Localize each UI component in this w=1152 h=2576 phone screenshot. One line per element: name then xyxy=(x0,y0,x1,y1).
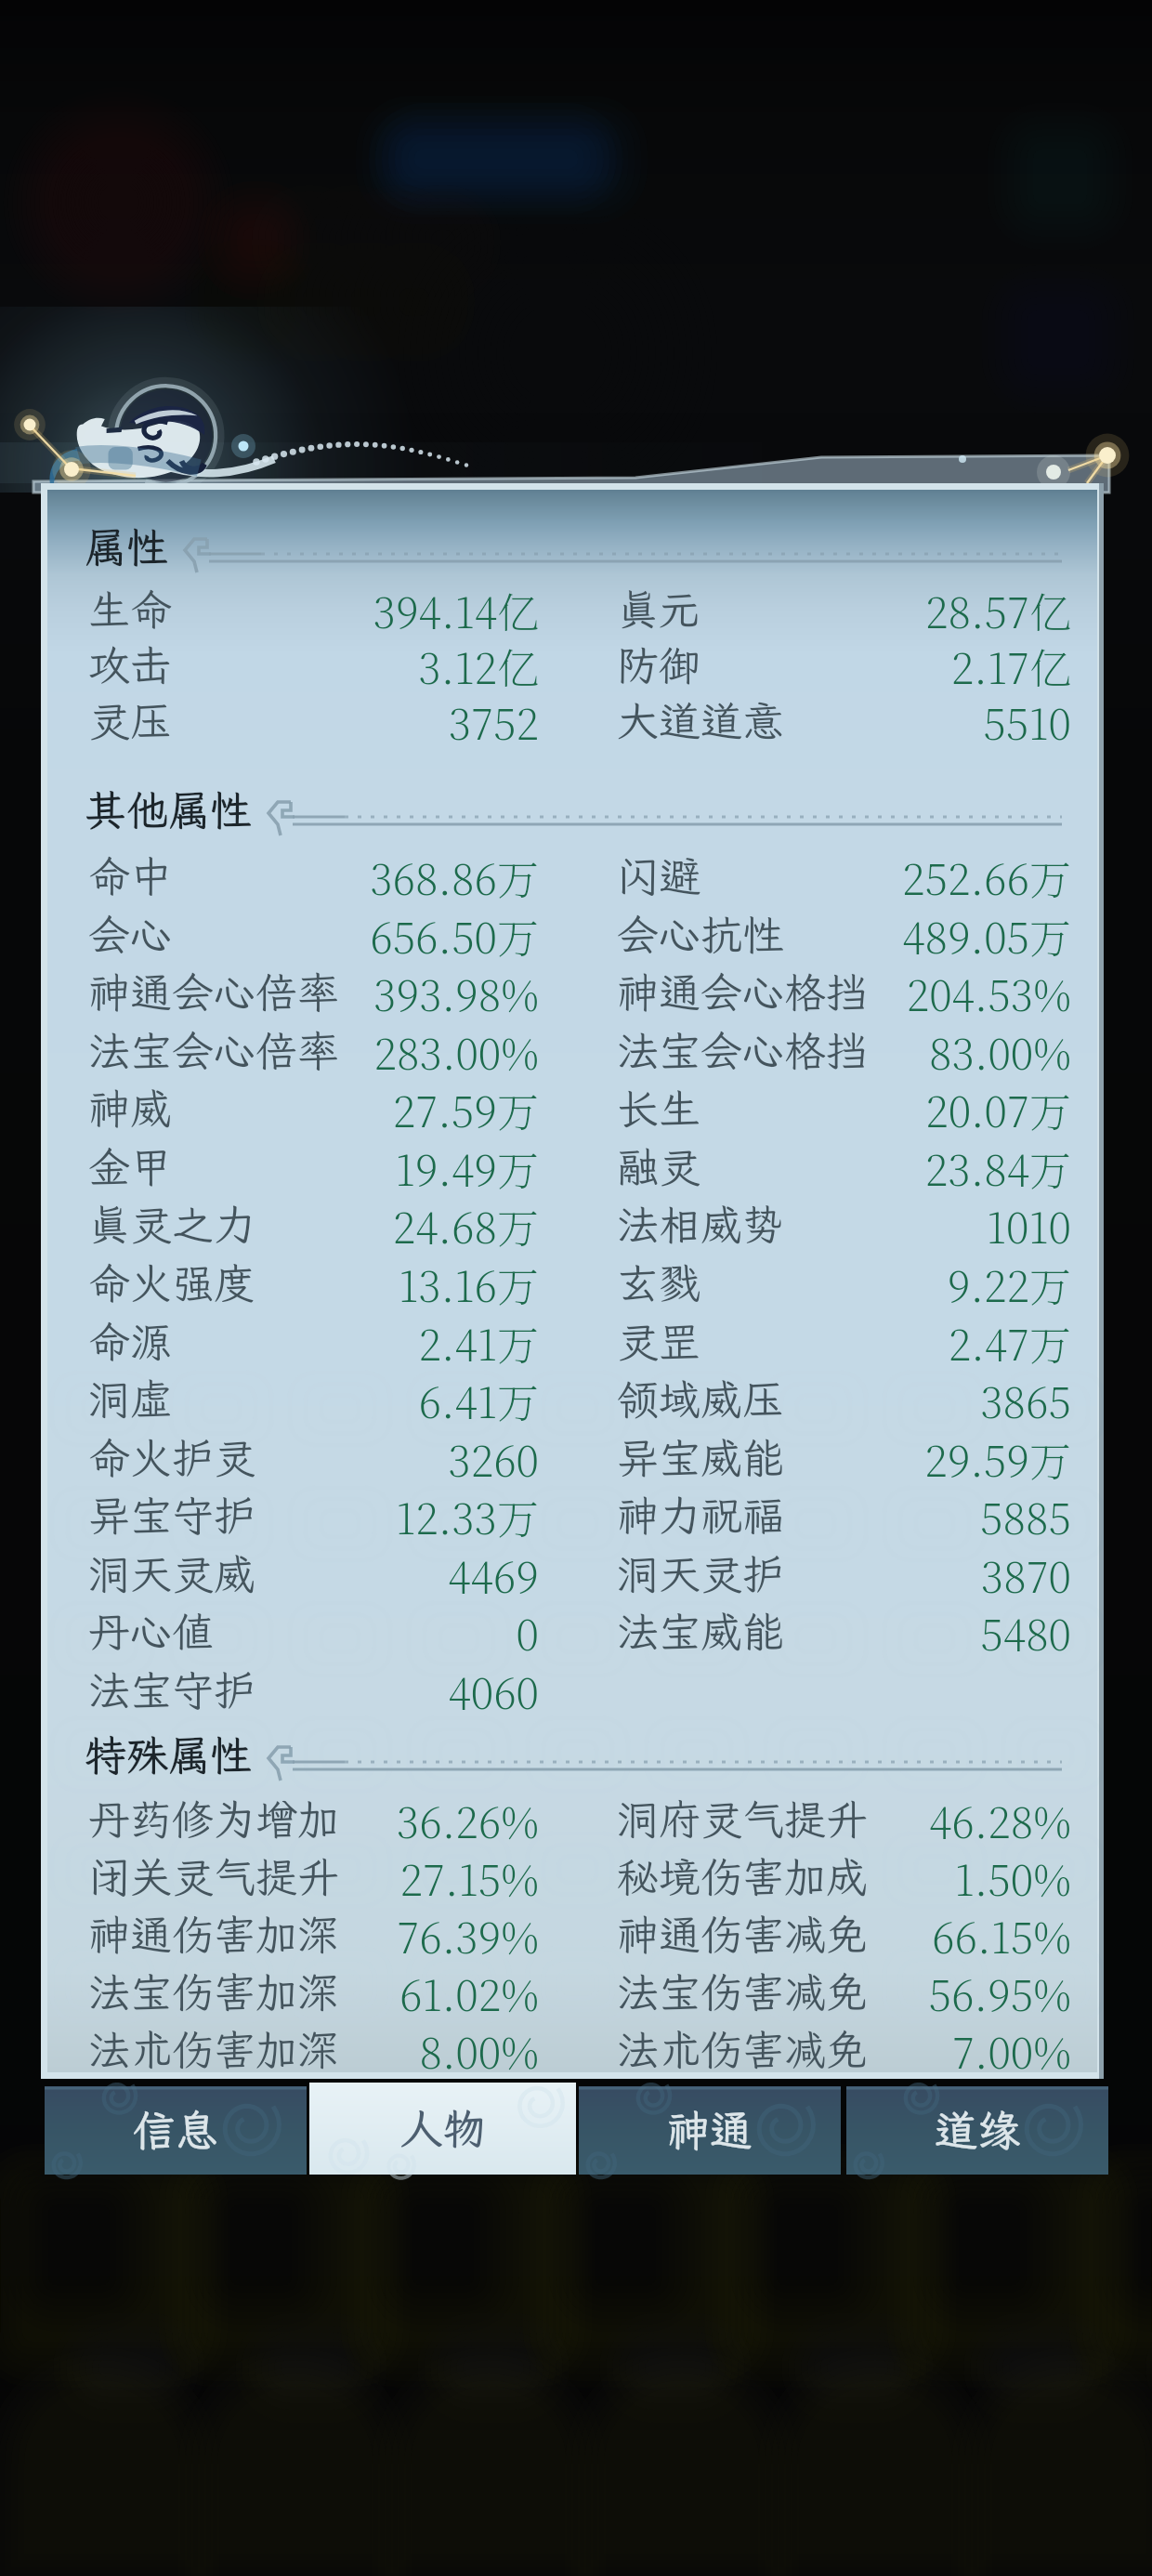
staticText: 法宝威能 xyxy=(617,1604,785,1659)
staticText: 1.50% xyxy=(870,1847,1071,1905)
staticText: 命源 xyxy=(88,1314,173,1369)
staticText: 法术伤害减免 xyxy=(617,2022,869,2077)
button[interactable]: 攻击 xyxy=(88,636,539,693)
button[interactable]: 会心 xyxy=(88,905,539,963)
staticText: 命火护灵 xyxy=(88,1430,256,1485)
staticText: 3870 xyxy=(786,1544,1071,1602)
staticText: 3865 xyxy=(786,1370,1071,1427)
button[interactable]: 金甲 xyxy=(88,1137,539,1195)
button[interactable]: 道缘 xyxy=(846,2086,1108,2175)
button[interactable]: 法术伤害减免 xyxy=(617,2020,1071,2078)
staticText: 13.16万 xyxy=(257,1254,539,1311)
button[interactable]: 人物 xyxy=(309,2083,576,2175)
staticText: 204.53% xyxy=(870,963,1071,1020)
staticText: 神通会心倍率 xyxy=(88,965,340,1019)
staticText: 丹药修为增加 xyxy=(88,1792,340,1847)
button[interactable]: 灵压 xyxy=(88,691,539,749)
staticText: 异宝威能 xyxy=(617,1430,785,1485)
staticText: 生命 xyxy=(88,582,173,637)
staticText: 656.50万 xyxy=(174,905,539,963)
button[interactable]: 长生 xyxy=(617,1079,1071,1137)
staticText: 4469 xyxy=(257,1544,539,1602)
staticText: 金甲 xyxy=(88,1139,173,1194)
staticText: 特殊属性 xyxy=(85,1728,253,1780)
button[interactable]: 法宝伤害减免 xyxy=(617,1963,1071,2020)
staticText: 洞虚 xyxy=(88,1372,173,1426)
button[interactable]: 闭关灵气提升 xyxy=(88,1847,539,1905)
staticText: 36.26% xyxy=(341,1790,539,1847)
staticText: 12.33万 xyxy=(257,1486,539,1544)
button[interactable]: 命源 xyxy=(88,1312,539,1370)
button[interactable]: 神通伤害减免 xyxy=(617,1905,1071,1963)
button[interactable]: 神通 xyxy=(579,2086,841,2175)
staticText: 0 xyxy=(216,1602,539,1660)
staticText: 人物 xyxy=(400,2100,486,2157)
button[interactable]: 真灵之力 xyxy=(88,1195,539,1253)
button[interactable]: 神通伤害加深 xyxy=(88,1905,539,1963)
button[interactable]: 命火强度 xyxy=(88,1254,539,1311)
staticText: 闭关灵气提升 xyxy=(88,1849,340,1904)
staticText: 2.41万 xyxy=(174,1312,539,1370)
button[interactable]: 法相威势 xyxy=(617,1195,1071,1253)
staticText: 法相威势 xyxy=(617,1197,785,1252)
button[interactable]: 玄戮 xyxy=(617,1254,1071,1311)
button[interactable]: 异宝守护 xyxy=(88,1486,539,1544)
button[interactable]: 生命 xyxy=(88,580,539,637)
button[interactable]: 会心抗性 xyxy=(617,905,1071,963)
staticText: 1010 xyxy=(786,1195,1071,1253)
staticText: 489.05万 xyxy=(786,905,1071,963)
button[interactable]: 法宝会心倍率 xyxy=(88,1021,539,1079)
button[interactable]: 神通会心倍率 xyxy=(88,963,539,1020)
button[interactable]: 法术伤害加深 xyxy=(88,2020,539,2078)
staticText: 秘境伤害加成 xyxy=(617,1849,869,1904)
button[interactable]: 法宝威能 xyxy=(617,1602,1071,1660)
button[interactable]: 秘境伤害加成 xyxy=(617,1847,1071,1905)
staticText: 玄戮 xyxy=(617,1255,701,1310)
staticText: 灵罡 xyxy=(617,1314,701,1369)
staticText: 46.28% xyxy=(870,1790,1071,1847)
button[interactable]: 融灵 xyxy=(617,1137,1071,1195)
staticText: 命火强度 xyxy=(88,1255,256,1310)
staticText: 9.22万 xyxy=(702,1254,1071,1311)
staticText: 其他属性 xyxy=(85,782,253,835)
staticText: 368.86万 xyxy=(174,847,539,904)
button[interactable]: 闪避 xyxy=(617,847,1071,904)
staticText: 神通伤害减免 xyxy=(617,1907,869,1962)
button[interactable]: 真元 xyxy=(617,580,1071,637)
staticText: 394.14亿 xyxy=(174,580,539,637)
button[interactable]: 神通会心格挡 xyxy=(617,963,1071,1020)
staticText: 丹心值 xyxy=(88,1604,215,1659)
button[interactable]: 洞天灵威 xyxy=(88,1544,539,1602)
button[interactable]: 灵罡 xyxy=(617,1312,1071,1370)
button[interactable]: 信息 xyxy=(45,2086,307,2175)
staticText: 3260 xyxy=(257,1428,539,1486)
button[interactable]: 异宝威能 xyxy=(617,1428,1071,1486)
button[interactable]: 法宝守护 xyxy=(88,1661,539,1718)
button[interactable]: 洞虚 xyxy=(88,1370,539,1427)
button[interactable]: 神力祝福 xyxy=(617,1486,1071,1544)
staticText: 会心 xyxy=(88,907,173,962)
staticText: 61.02% xyxy=(341,1963,539,2020)
button[interactable]: 领域威压 xyxy=(617,1370,1071,1427)
staticText: 融灵 xyxy=(617,1139,701,1194)
staticText: 19.49万 xyxy=(174,1137,539,1195)
button[interactable]: 神威 xyxy=(88,1079,539,1137)
button[interactable]: 法宝会心格挡 xyxy=(617,1021,1071,1079)
staticText: 神通 xyxy=(667,2102,753,2159)
button[interactable]: 丹药修为增加 xyxy=(88,1790,539,1847)
button[interactable]: 洞天灵护 xyxy=(617,1544,1071,1602)
staticText: 23.84万 xyxy=(702,1137,1071,1195)
button[interactable]: 丹心值 xyxy=(88,1602,539,1660)
button[interactable]: 防御 xyxy=(617,636,1071,693)
staticText: 神威 xyxy=(88,1081,173,1136)
button[interactable]: 命中 xyxy=(88,847,539,904)
staticText: 6.41万 xyxy=(174,1370,539,1427)
button[interactable]: 洞府灵气提升 xyxy=(617,1790,1071,1847)
button[interactable]: 命火护灵 xyxy=(88,1428,539,1486)
staticText: 393.98% xyxy=(341,963,539,1020)
button[interactable]: 法宝伤害加深 xyxy=(88,1963,539,2020)
staticText: 属性 xyxy=(85,519,169,572)
button[interactable]: 大道道意 xyxy=(617,691,1071,749)
staticText: 法宝会心倍率 xyxy=(88,1023,340,1078)
staticText: 命中 xyxy=(88,848,173,903)
